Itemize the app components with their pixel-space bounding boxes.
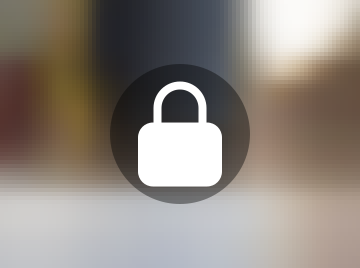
button[interactable]: Locked content	[110, 64, 250, 204]
